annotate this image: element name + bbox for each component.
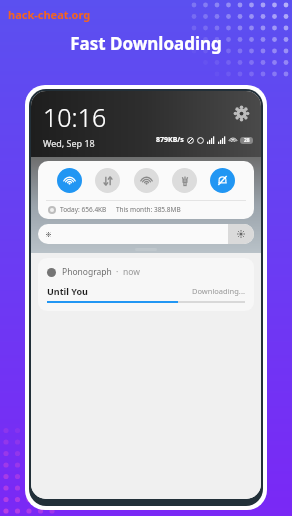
button[interactable]: Mute	[210, 168, 235, 193]
staticText: hack-cheat.org	[8, 7, 91, 22]
staticText: 879KB/s	[156, 135, 184, 145]
button[interactable]: Hotspot	[134, 168, 159, 193]
staticText: This month: 385.8MB	[116, 205, 181, 214]
button[interactable]: Phonograph	[38, 258, 254, 311]
button[interactable]: Mobile data	[95, 168, 120, 193]
button[interactable]: Brightness	[38, 224, 254, 244]
button[interactable]: Wi-Fi	[57, 168, 82, 193]
staticText: Downloading...	[192, 286, 245, 296]
button[interactable]: Settings	[231, 103, 251, 123]
staticText: Fast Downloading	[0, 32, 292, 55]
staticText: 10:16	[43, 100, 107, 134]
staticText: Until You	[47, 285, 88, 297]
staticText: ·	[116, 266, 119, 278]
staticText: 28	[244, 137, 250, 144]
staticText: now	[123, 266, 140, 278]
staticText: Wed, Sep 18	[43, 137, 95, 149]
staticText: Phonograph	[62, 266, 112, 278]
button[interactable]: Flashlight	[172, 168, 197, 193]
staticText: Today: 656.4KB	[60, 205, 107, 214]
